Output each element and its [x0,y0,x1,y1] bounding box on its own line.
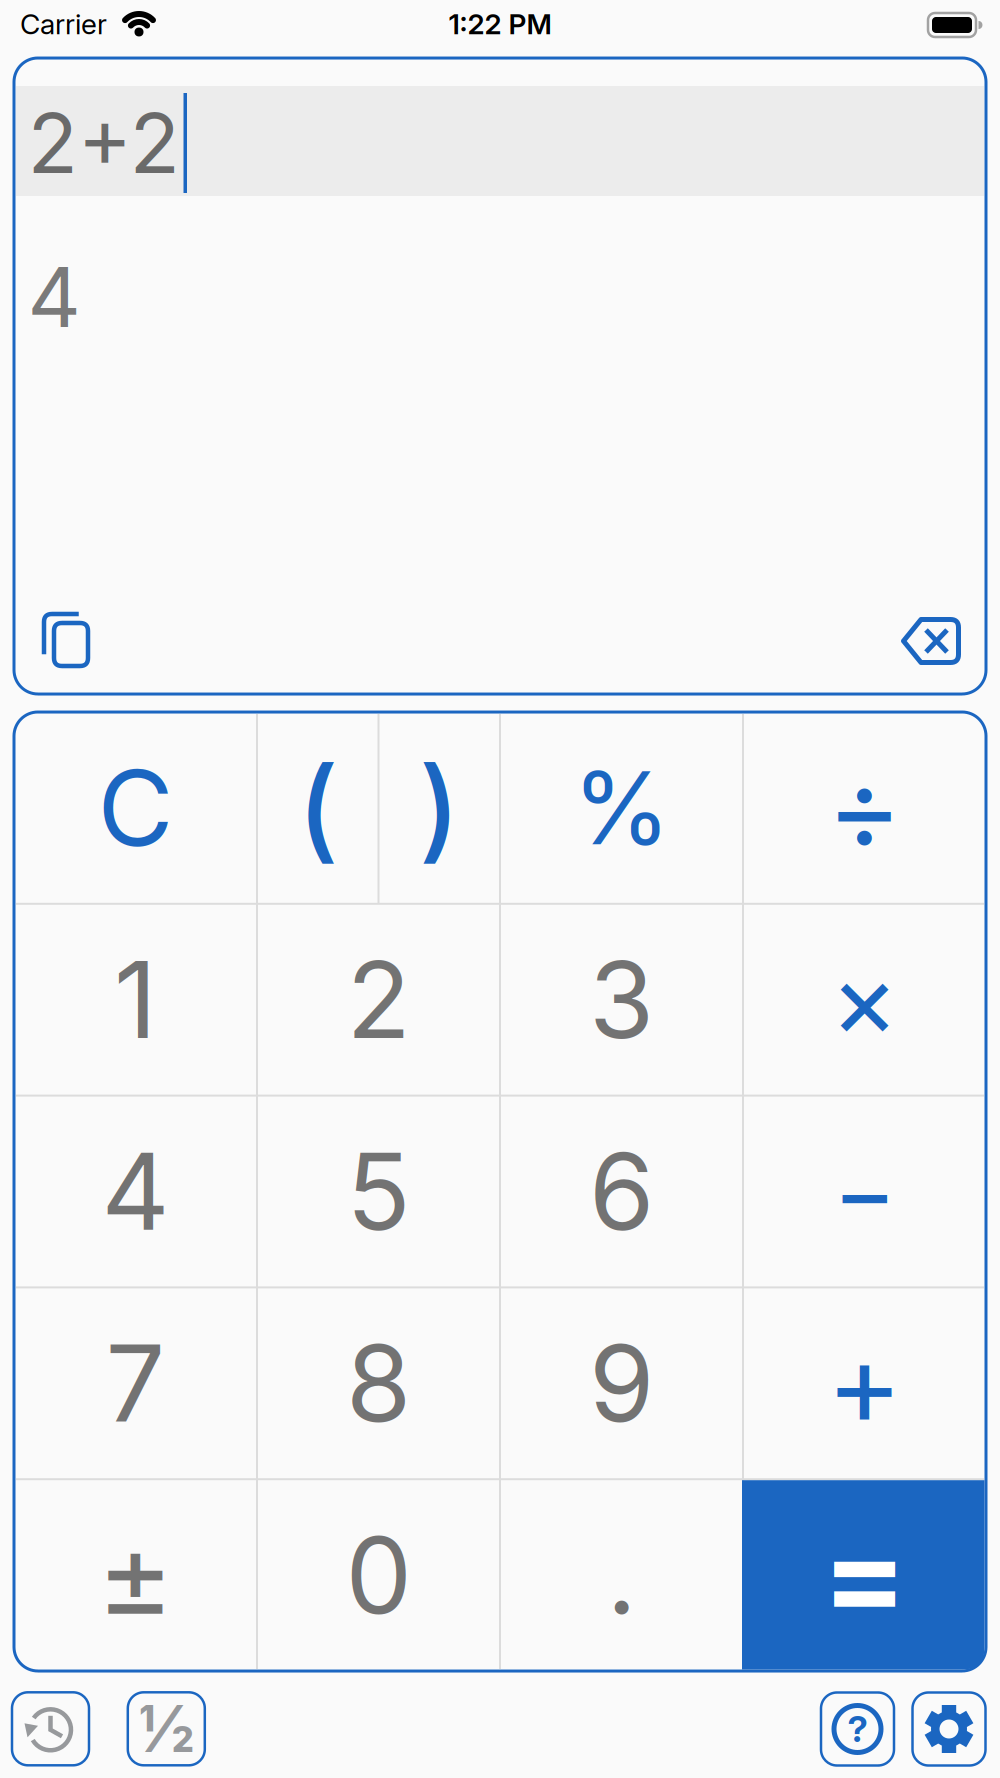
button[interactable]: % [500,712,743,904]
button[interactable]: 9 [500,1287,743,1479]
staticText: 4 [27,247,80,347]
staticText: × [830,937,899,1063]
button[interactable]: ÷ [743,712,986,904]
staticText: 9 [589,1320,654,1447]
staticText: ± [96,1504,174,1646]
staticText: . [606,1511,636,1639]
staticText: 5 [346,1128,410,1255]
staticText: 3 [589,936,654,1063]
staticText: 0 [345,1511,411,1639]
button[interactable]: History [12,1692,89,1765]
button[interactable]: 2 [257,904,500,1096]
button[interactable]: Help [821,1692,894,1765]
button[interactable]: Fractions [128,1692,205,1765]
button[interactable]: ( [257,712,378,904]
button[interactable]: C [14,712,257,904]
button[interactable]: . [500,1479,743,1671]
staticText: 4 [101,1128,169,1255]
button[interactable]: 7 [14,1287,257,1479]
staticText: = [822,1499,907,1651]
staticText: Carrier [20,7,107,41]
staticText: ) [419,740,460,876]
staticText: 1 [114,936,157,1063]
button[interactable]: 1 [14,904,257,1096]
staticText: 6 [589,1128,654,1255]
staticText: ? [847,1707,867,1751]
button[interactable]: + [743,1287,986,1479]
button[interactable]: ) [378,712,500,904]
staticText: + [826,1314,902,1453]
staticText: 1:22 PM [448,7,551,41]
staticText: 2 [346,936,410,1063]
staticText: C [97,745,173,871]
staticText: ( [297,740,338,876]
staticText: ½ [138,1690,194,1767]
staticText: 8 [346,1320,411,1447]
button[interactable]: 3 [500,904,743,1096]
button[interactable]: 5 [257,1096,500,1287]
button[interactable]: × [743,904,986,1096]
button[interactable]: 8 [257,1287,500,1479]
button[interactable]: ± [14,1479,257,1671]
button[interactable]: = [743,1479,986,1671]
button[interactable]: 6 [500,1096,743,1287]
button[interactable]: − [743,1096,986,1287]
button[interactable]: Settings [912,1692,985,1765]
button[interactable]: Copy [41,611,91,669]
staticText: 2+2 [27,93,179,193]
button[interactable]: Backspace [901,617,961,665]
button[interactable]: 0 [257,1479,500,1671]
staticText: % [572,747,670,868]
staticText: − [832,1133,896,1250]
button[interactable]: 4 [14,1096,257,1287]
staticText: ÷ [826,738,902,877]
staticText: 7 [105,1320,165,1447]
